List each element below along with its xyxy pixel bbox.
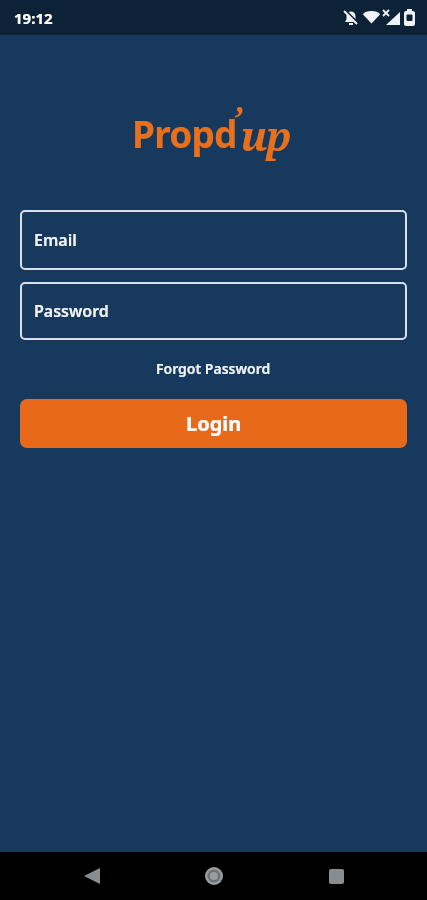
staticText: Password (34, 300, 109, 322)
button[interactable] (68, 852, 116, 900)
staticText: Login (186, 410, 242, 437)
button[interactable]: Login (20, 399, 407, 448)
staticText: Propd (132, 108, 237, 158)
staticText: ’up (232, 96, 291, 162)
button[interactable]: Forgot Password (156, 359, 271, 378)
button[interactable] (312, 852, 360, 900)
button[interactable]: Password (20, 282, 407, 340)
button[interactable] (190, 852, 238, 900)
button[interactable]: Email (20, 210, 407, 270)
staticText: Email (34, 229, 77, 251)
staticText: 19:12 (14, 8, 53, 28)
